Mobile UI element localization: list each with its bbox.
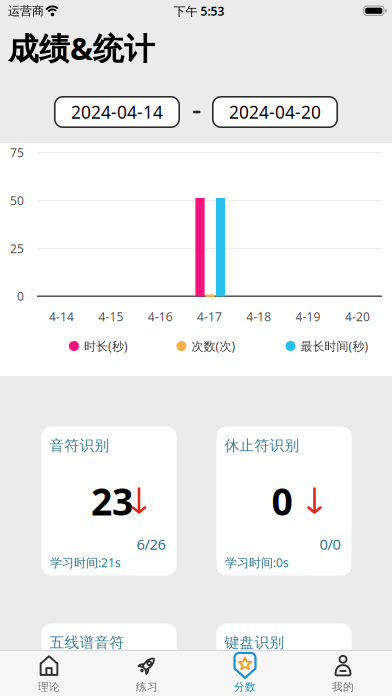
staticText: 25 xyxy=(10,240,24,256)
button[interactable]: 休止符识别 xyxy=(216,426,351,575)
staticText: 23 xyxy=(91,476,133,526)
staticText: 成绩&统计 xyxy=(8,28,155,68)
staticText: 4-15 xyxy=(98,308,123,324)
button[interactable]: 2024-04-20 xyxy=(212,96,338,128)
button[interactable]: 2024-04-14 xyxy=(54,96,180,128)
button[interactable]: 音符识别 xyxy=(41,426,176,575)
staticText: 50 xyxy=(10,192,24,208)
button[interactable]: 键盘识别 xyxy=(216,623,351,696)
staticText: 2024-04-20 xyxy=(229,100,321,123)
staticText: 4-20 xyxy=(345,308,370,324)
staticText: 6/26 xyxy=(136,534,165,554)
staticText: 分数 xyxy=(234,680,256,693)
staticText: 0 xyxy=(271,476,292,526)
staticText: 休止符识别 xyxy=(224,436,299,454)
staticText: 键盘识别 xyxy=(224,633,284,651)
button[interactable]: 理论 xyxy=(4,650,94,696)
staticText: 学习时间:0s xyxy=(225,554,289,570)
staticText: 75 xyxy=(10,144,24,160)
button[interactable]: 练习 xyxy=(102,650,192,696)
staticText: 次数(次) xyxy=(191,338,235,354)
button[interactable]: 五线谱音符 xyxy=(41,623,176,696)
staticText: 运营商 xyxy=(8,4,44,18)
staticText: 时长(秒) xyxy=(84,338,128,354)
staticText: 2024-04-14 xyxy=(71,100,163,123)
staticText: 0/0 xyxy=(319,534,340,554)
staticText: 4-17 xyxy=(197,308,222,324)
staticText: 我的 xyxy=(332,680,354,693)
staticText: 最长时间(秒) xyxy=(300,338,368,354)
staticText: 音符识别 xyxy=(49,436,109,454)
button[interactable]: 我的 xyxy=(298,650,388,696)
staticText: 4-16 xyxy=(148,308,173,324)
staticText: 4-19 xyxy=(296,308,321,324)
button[interactable]: 分数 xyxy=(200,650,290,696)
staticText: 理论 xyxy=(38,680,60,693)
staticText: 练习 xyxy=(136,680,158,693)
staticText: 4-18 xyxy=(246,308,271,324)
staticText: 下午 5:53 xyxy=(173,3,224,19)
staticText: 五线谱音符 xyxy=(49,633,124,651)
staticText: 4-14 xyxy=(49,308,74,324)
staticText: 0 xyxy=(17,288,24,304)
staticText: 学习时间:21s xyxy=(50,554,121,570)
